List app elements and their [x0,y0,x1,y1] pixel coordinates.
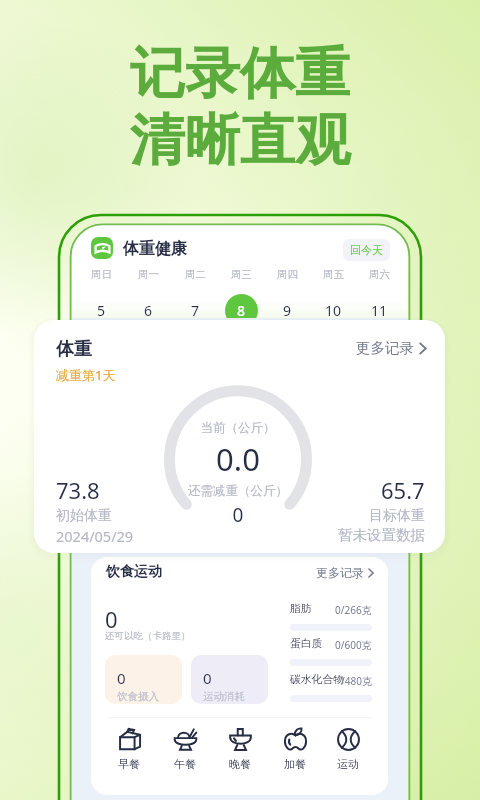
staticText: 脂肪 [290,602,312,616]
staticText: 0/266克 [335,603,372,617]
staticText: 周日 [91,268,112,281]
staticText: 还可以吃（卡路里） [105,630,191,642]
button[interactable]: 回今天 [343,239,390,261]
staticText: 回今天 [350,243,383,257]
button[interactable]: 午餐 [162,728,208,771]
staticText: 0 [117,668,126,688]
staticText: 体重健康 [123,239,187,259]
staticText: 0 [105,604,118,634]
button[interactable]: 0 [191,655,268,704]
button[interactable]: 7 [172,294,218,318]
staticText: 5 [97,301,106,318]
staticText: 运动 [337,757,359,771]
staticText: 晚餐 [229,757,251,771]
staticText: 9 [283,301,292,318]
staticText: 还需减重（公斤） [138,483,338,499]
staticText: 10 [325,301,342,318]
staticText: 周六 [369,268,390,281]
staticText: 加餐 [284,757,306,771]
button[interactable]: 6 [125,294,172,318]
button[interactable]: 体重 [34,320,445,553]
staticText: /480克 [341,674,372,688]
staticText: 早餐 [118,757,140,771]
staticText: 饮食摄入 [117,690,159,703]
staticText: 2024/05/29 [56,526,134,546]
button[interactable]: 8 [218,294,264,318]
staticText: 暂未设置数据 [338,526,425,544]
staticText: 减重第1天 [56,366,116,384]
staticText: 周三 [231,268,252,281]
button[interactable]: 10 [310,294,356,318]
staticText: 6 [144,301,153,318]
button[interactable]: 更多记录 [316,565,374,580]
staticText: 当前（公斤） [138,420,338,436]
staticText: 初始体重 [56,507,112,525]
staticText: 体重 [56,338,92,361]
staticText: 0.0 [138,438,338,480]
staticText: 饮食运动 [106,563,162,581]
staticText: 蛋白质 [290,637,323,651]
button[interactable]: 运动 [325,728,371,771]
button[interactable]: 9 [264,294,310,318]
staticText: 记录体重 [0,39,480,108]
staticText: 0 [138,502,338,528]
staticText: 运动消耗 [203,690,245,703]
staticText: 周二 [185,268,206,281]
button[interactable]: 0 [105,655,182,704]
staticText: 目标体重 [369,507,425,525]
button[interactable]: 5 [78,294,125,318]
staticText: 65.7 [381,475,425,505]
button[interactable]: 早餐 [106,728,152,771]
button[interactable]: 11 [356,294,402,318]
staticText: 清晰直观 [0,106,480,175]
staticText: 碳水化合物 [290,673,344,687]
staticText: 周一 [138,268,159,281]
staticText: 11 [371,301,388,318]
staticText: 更多记录 [356,339,414,357]
button[interactable]: 体重健康 [91,237,113,259]
button[interactable]: 加餐 [272,728,318,771]
staticText: 周五 [323,268,344,281]
button[interactable]: 更多记录 [356,339,427,357]
staticText: 周四 [277,268,298,281]
staticText: 更多记录 [316,565,364,580]
staticText: 0/600克 [335,638,372,652]
staticText: 73.8 [56,475,100,505]
staticText: 8 [237,301,246,318]
staticText: 午餐 [174,757,196,771]
staticText: 0 [203,668,212,688]
staticText: 7 [191,301,200,318]
button[interactable]: 晚餐 [217,728,263,771]
